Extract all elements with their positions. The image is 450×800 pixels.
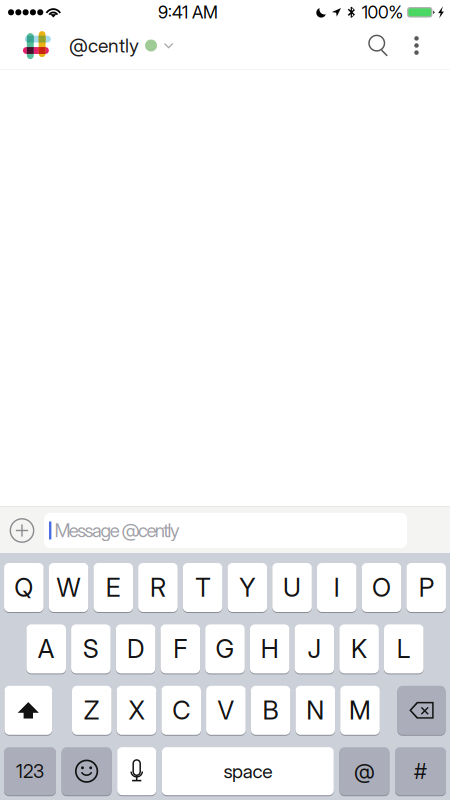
staticText: V bbox=[217, 695, 234, 726]
staticText: U bbox=[283, 572, 301, 603]
button[interactable]: E bbox=[93, 562, 133, 612]
staticText: S bbox=[83, 634, 99, 664]
button[interactable]: B bbox=[251, 685, 290, 735]
button[interactable]: X bbox=[117, 685, 156, 735]
staticText: R bbox=[150, 572, 166, 603]
staticText: C bbox=[172, 695, 190, 726]
staticText: G bbox=[215, 634, 234, 664]
staticText: T bbox=[195, 572, 210, 603]
button[interactable]: O bbox=[362, 562, 401, 612]
staticText: N bbox=[306, 695, 324, 726]
button[interactable]: Y bbox=[227, 562, 267, 612]
button[interactable]: space bbox=[162, 747, 334, 796]
button[interactable]: Shift bbox=[4, 685, 52, 735]
staticText: D bbox=[127, 634, 144, 664]
staticText: 9:41 AM bbox=[158, 2, 218, 23]
staticText: K bbox=[351, 634, 367, 664]
button[interactable]: Emoji bbox=[62, 747, 112, 796]
button[interactable]: K bbox=[339, 624, 379, 674]
button[interactable]: F bbox=[160, 624, 200, 674]
button[interactable]: Q bbox=[4, 562, 44, 612]
staticText: Q bbox=[14, 572, 33, 603]
staticText: L bbox=[397, 634, 411, 664]
staticText: M bbox=[349, 695, 371, 726]
button[interactable]: N bbox=[295, 685, 335, 735]
button[interactable]: Search bbox=[356, 23, 400, 67]
staticText: Z bbox=[84, 695, 100, 726]
staticText: Y bbox=[239, 572, 255, 603]
staticText: Message @cently bbox=[54, 519, 180, 542]
button[interactable]: L bbox=[384, 624, 424, 674]
button[interactable]: More options bbox=[400, 23, 433, 67]
button[interactable]: T bbox=[183, 562, 222, 612]
button[interactable]: Z bbox=[72, 685, 112, 735]
staticText: B bbox=[263, 695, 279, 726]
button[interactable]: @ bbox=[339, 747, 389, 796]
staticText: 100% bbox=[362, 2, 404, 23]
staticText: X bbox=[128, 695, 144, 726]
button[interactable]: D bbox=[116, 624, 155, 674]
button[interactable]: G bbox=[205, 624, 245, 674]
staticText: E bbox=[106, 572, 121, 603]
button[interactable]: M bbox=[340, 685, 380, 735]
staticText: W bbox=[56, 572, 80, 603]
button[interactable]: V bbox=[206, 685, 246, 735]
button[interactable]: U bbox=[272, 562, 312, 612]
staticText: space bbox=[223, 759, 272, 783]
button[interactable]: Dictate bbox=[117, 747, 156, 796]
staticText: F bbox=[173, 634, 187, 664]
staticText: O bbox=[372, 572, 391, 603]
button[interactable]: # bbox=[395, 747, 446, 796]
staticText: @cently bbox=[69, 34, 139, 57]
staticText: 123 bbox=[16, 760, 44, 782]
staticText: H bbox=[261, 634, 279, 664]
staticText: # bbox=[414, 758, 427, 784]
button[interactable]: A bbox=[26, 624, 66, 674]
button[interactable]: H bbox=[250, 624, 289, 674]
button[interactable]: S bbox=[71, 624, 111, 674]
button[interactable]: 123 bbox=[4, 747, 56, 796]
button[interactable]: W bbox=[49, 562, 88, 612]
button[interactable]: P bbox=[406, 562, 446, 612]
button[interactable]: C bbox=[161, 685, 201, 735]
button[interactable]: I bbox=[317, 562, 356, 612]
button[interactable]: @cently bbox=[0, 23, 173, 67]
staticText: J bbox=[307, 634, 321, 664]
button[interactable]: Delete bbox=[397, 685, 445, 735]
button[interactable]: R bbox=[138, 562, 178, 612]
staticText: P bbox=[419, 572, 434, 603]
button[interactable]: J bbox=[295, 624, 334, 674]
button[interactable]: Add attachment bbox=[0, 513, 44, 548]
staticText: A bbox=[38, 634, 55, 664]
staticText: I bbox=[334, 572, 340, 603]
staticText: @ bbox=[354, 758, 375, 784]
